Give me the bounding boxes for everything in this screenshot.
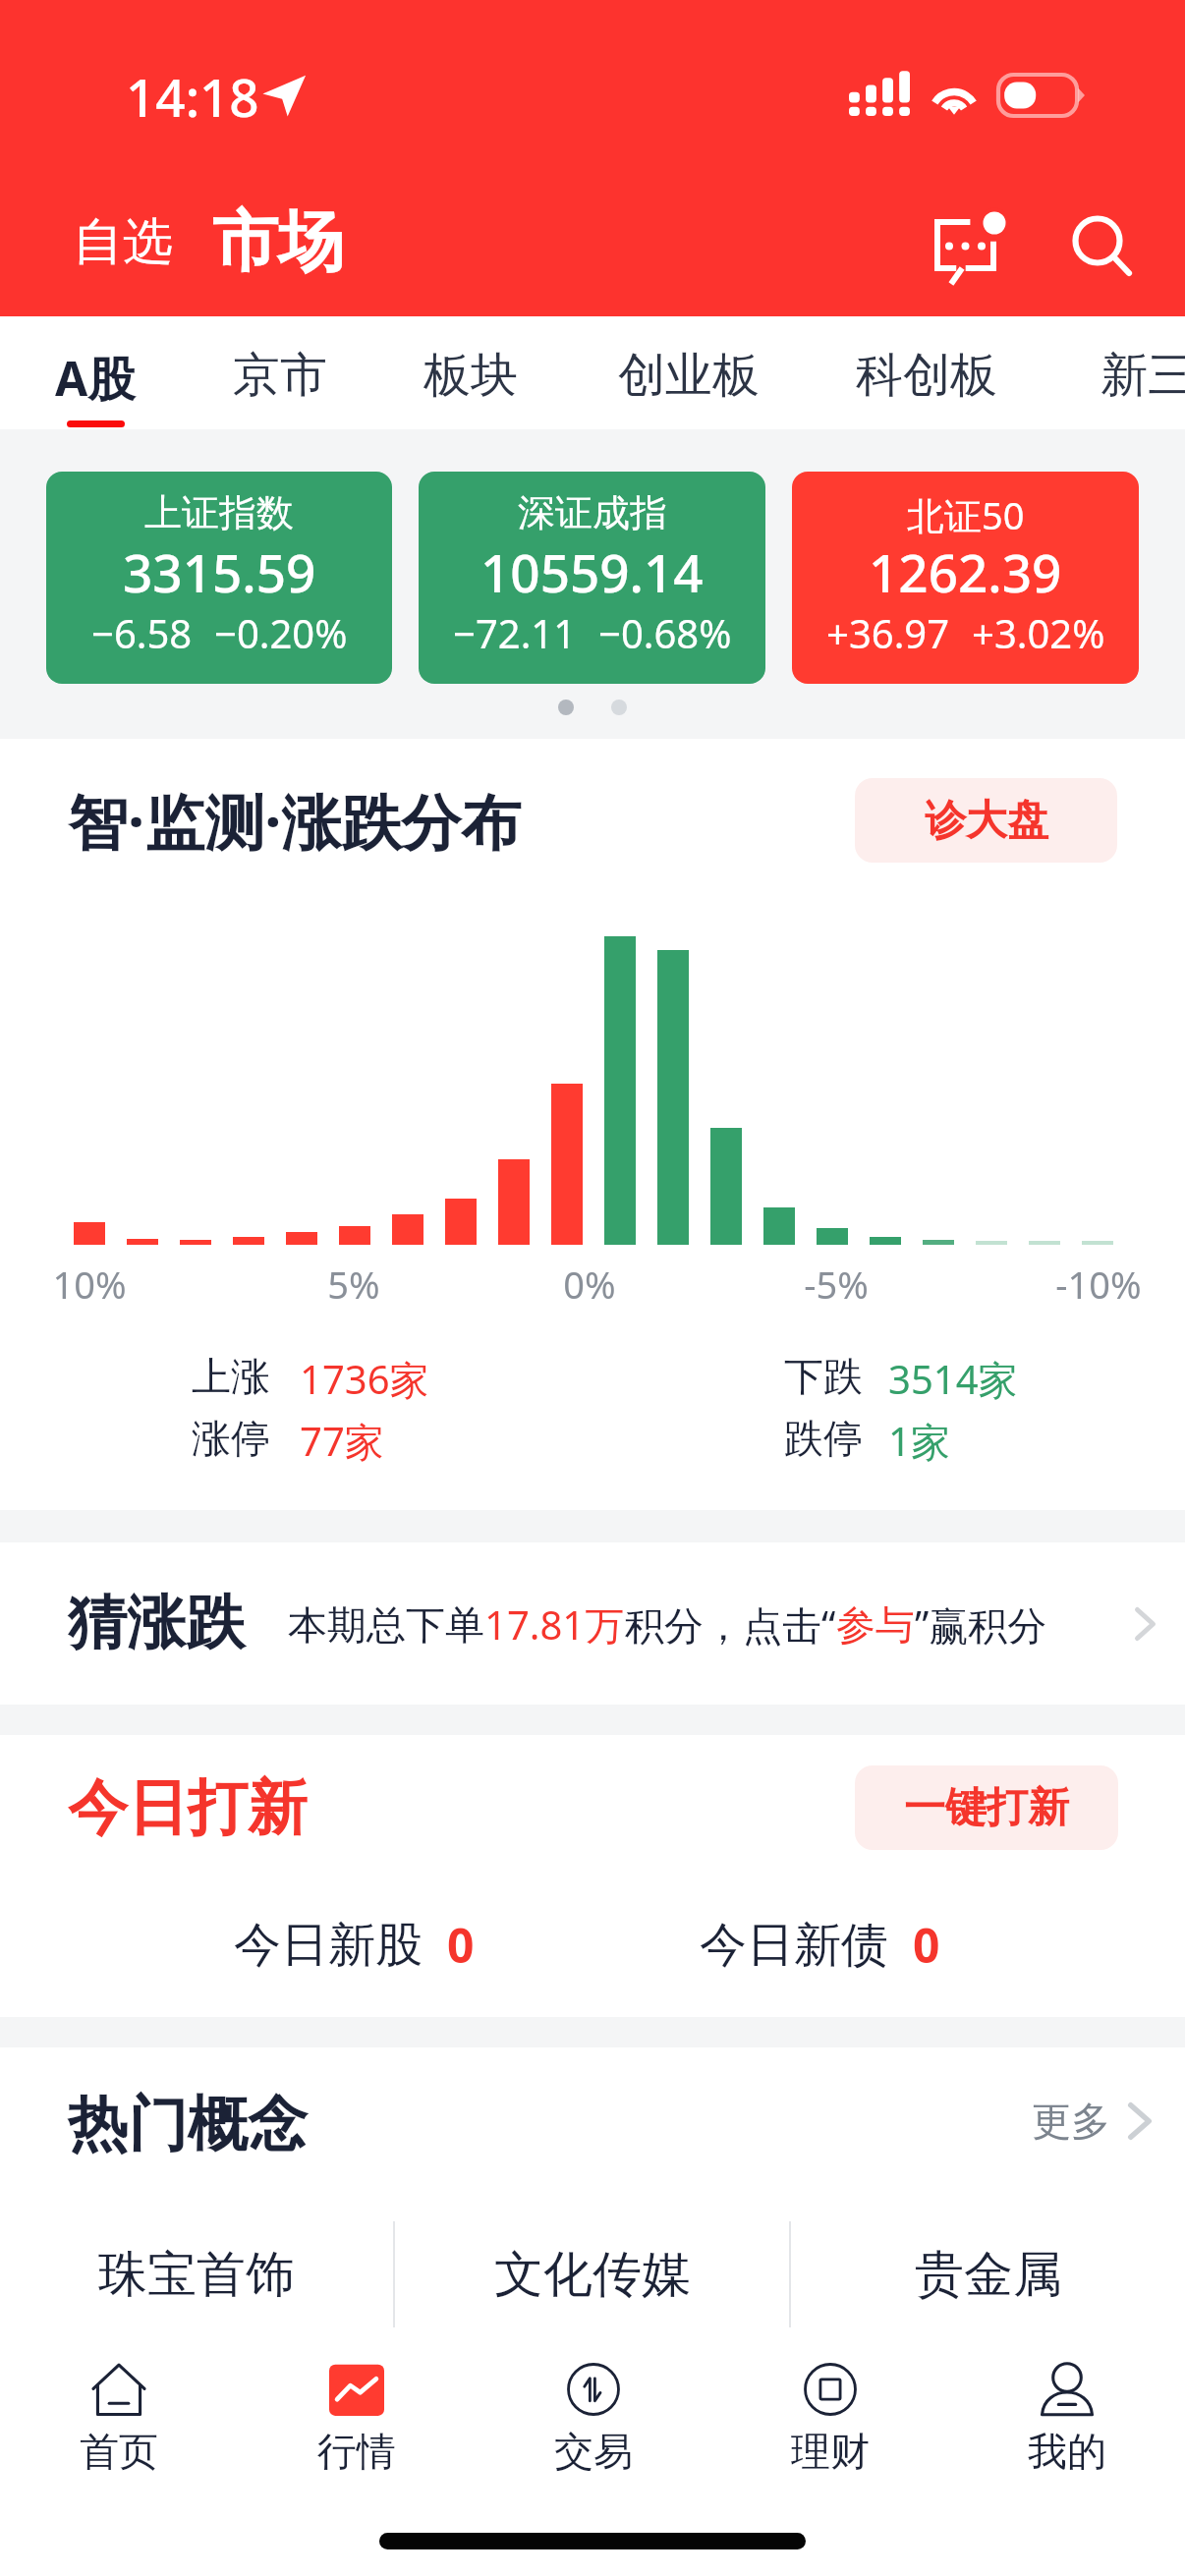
button[interactable]: 京市 [223,316,337,429]
staticText: −6.58 [91,606,193,659]
button[interactable]: 更多 [1032,2097,1152,2146]
staticText: -5% [789,1259,883,1310]
staticText: 0% [542,1259,637,1310]
button[interactable]: 市场 [206,195,350,289]
staticText: 14:18 [126,61,259,132]
staticText: 参与 [836,1600,915,1650]
staticText: 创业板 [618,346,760,405]
staticText: 10559.14 [480,536,704,607]
staticText: 热门概念 [68,2087,308,2162]
staticText: 上证指数 [144,489,294,536]
button[interactable]: Messages [912,200,1010,299]
staticText: 猜涨跌 [68,1586,245,1660]
staticText: 1家 [888,1414,950,1468]
staticText: ”赢积分 [915,1597,1047,1652]
button[interactable]: 板块 [414,316,528,429]
button[interactable]: 我的 [948,2358,1185,2515]
staticText: 首页 [80,2427,158,2476]
staticText: 涨停 [192,1414,270,1463]
button[interactable]: 新三 [1091,316,1185,429]
staticText: 今日新债 [700,1916,888,1975]
staticText: 下跌 [784,1352,863,1401]
staticText: 77家 [300,1414,384,1468]
staticText: 跌停 [784,1414,863,1463]
staticText: 0 [447,1913,475,1977]
staticText: 贵金属 [915,2244,1062,2306]
staticText: +3.02% [972,606,1105,659]
staticText: 一键打新 [904,1782,1069,1834]
staticText: 智·监测·涨跌分布 [68,780,522,862]
staticText: 今日新股 [234,1916,423,1975]
button[interactable]: 深证成指 [419,472,765,684]
staticText: 深证成指 [518,489,667,536]
staticText: 5% [307,1259,401,1310]
staticText: 我的 [1028,2427,1106,2476]
staticText: 市场 [212,200,344,283]
staticText: 0 [913,1913,940,1977]
button[interactable]: 理财 [711,2358,948,2515]
staticText: 3315.59 [123,536,316,607]
staticText: 珠宝首饰 [98,2244,295,2306]
button[interactable]: 交易 [475,2358,711,2515]
staticText: 1262.39 [869,536,1062,607]
staticText: 自选 [73,210,173,273]
button[interactable]: 贵金属 [791,2217,1185,2331]
button[interactable]: A股 [38,316,152,429]
button[interactable]: 行情 [238,2358,475,2515]
button[interactable]: 诊大盘 [855,778,1117,863]
button[interactable]: 北证50 [792,472,1139,684]
staticText: 京市 [233,346,327,405]
button[interactable]: 珠宝首饰 [0,2217,393,2331]
staticText: 10% [42,1259,137,1310]
staticText: 积分，点击“ [625,1597,836,1652]
button[interactable]: 自选 [65,200,181,283]
staticText: 本期总下单 [288,1600,484,1650]
staticText: −0.68% [598,606,732,659]
staticText: 北证50 [907,489,1025,540]
staticText: 今日打新 [68,1770,308,1846]
staticText: 诊大盘 [925,795,1048,847]
staticText: −72.11 [453,606,577,659]
button[interactable]: 上证指数 [46,472,392,684]
button[interactable]: 首页 [0,2358,238,2515]
staticText: +36.97 [826,606,950,659]
staticText: 理财 [791,2427,870,2476]
staticText: −0.20% [214,606,348,659]
staticText: 上涨 [192,1352,270,1401]
staticText: 17.81万 [484,1597,625,1652]
staticText: 3514家 [888,1352,1018,1406]
button[interactable]: 猜涨跌 [0,1542,1185,1705]
button[interactable]: 文化传媒 [395,2217,789,2331]
button[interactable]: 创业板 [610,316,767,429]
staticText: 更多 [1032,2097,1110,2146]
staticText: 板块 [423,346,518,405]
staticText: 行情 [317,2427,396,2476]
staticText: 科创板 [856,346,997,405]
button[interactable]: Search [1059,204,1154,299]
button[interactable]: 科创板 [848,316,1005,429]
staticText: -10% [1051,1259,1146,1310]
staticText: 新三 [1100,346,1185,405]
staticText: A股 [55,346,136,411]
button[interactable]: 一键打新 [855,1765,1118,1850]
staticText: 文化传媒 [494,2244,691,2306]
staticText: 交易 [554,2427,633,2476]
staticText: 1736家 [300,1352,429,1406]
